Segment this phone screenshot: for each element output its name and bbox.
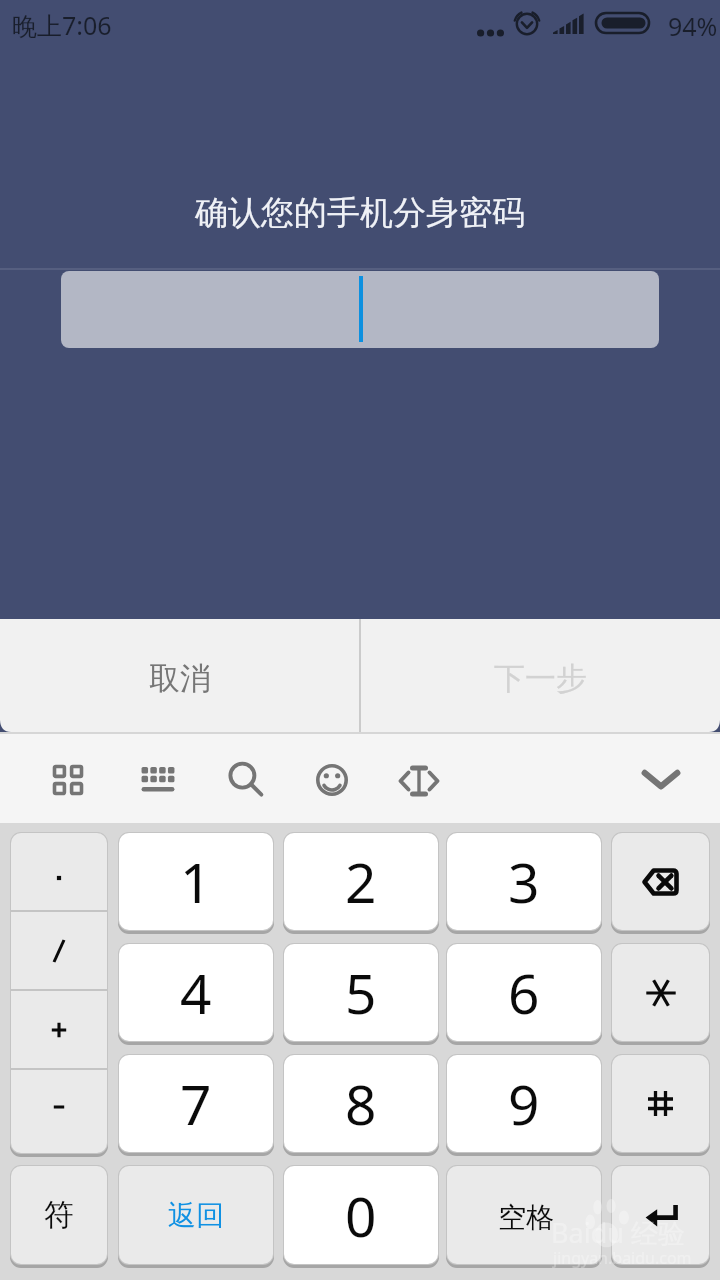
button[interactable] [612, 944, 709, 1041]
staticText: 晚上7:06 [12, 8, 112, 42]
staticText: 2 [345, 844, 377, 919]
staticText: 8 [345, 1066, 377, 1141]
button[interactable]: 3 [447, 833, 601, 930]
staticText: 取消 [149, 659, 211, 698]
button[interactable]: 9 [447, 1055, 601, 1152]
button[interactable]: Symbols [50, 762, 86, 798]
staticText: 3 [508, 844, 540, 919]
staticText: 5 [345, 955, 377, 1030]
button[interactable]: Hide keyboard [637, 762, 685, 796]
button[interactable]: 空格 [447, 1166, 601, 1264]
button[interactable] [612, 1055, 709, 1152]
button[interactable] [11, 1070, 107, 1153]
button[interactable]: Keyboard layout [140, 764, 176, 794]
button[interactable]: 6 [447, 944, 601, 1041]
staticText: 下一步 [494, 659, 587, 698]
staticText: 4 [180, 955, 212, 1030]
staticText: 0 [345, 1178, 377, 1253]
staticText: 9 [508, 1066, 540, 1141]
button[interactable]: 2 [284, 833, 438, 930]
button[interactable]: 7 [119, 1055, 273, 1152]
button[interactable]: 取消 [0, 619, 360, 734]
button[interactable] [11, 912, 107, 989]
button[interactable]: 0 [284, 1166, 438, 1264]
button[interactable]: 8 [284, 1055, 438, 1152]
staticText: 空格 [498, 1200, 554, 1235]
staticText: Baidu 经验 [551, 1214, 685, 1251]
button[interactable] [11, 991, 107, 1068]
staticText: 符 [44, 1196, 74, 1234]
staticText: 6 [508, 955, 540, 1030]
button[interactable]: Move cursor [398, 760, 440, 802]
button[interactable]: 5 [284, 944, 438, 1041]
button[interactable]: 下一步 [360, 619, 720, 734]
button[interactable] [612, 1166, 709, 1264]
button[interactable] [61, 271, 659, 348]
button[interactable] [11, 833, 107, 910]
button[interactable]: 符 [11, 1166, 107, 1264]
staticText: 94% [668, 9, 718, 43]
button[interactable] [612, 833, 709, 930]
staticText: 返回 [168, 1198, 224, 1233]
button[interactable]: Emoji [312, 760, 352, 800]
staticText: jingyan.baidu.com [553, 1247, 692, 1269]
button[interactable]: 返回 [119, 1166, 273, 1264]
button[interactable]: Search [226, 760, 266, 800]
staticText: 1 [180, 844, 212, 919]
button[interactable]: 4 [119, 944, 273, 1041]
button[interactable]: 1 [119, 833, 273, 930]
staticText: 7 [180, 1066, 212, 1141]
staticText: 确认您的手机分身密码 [195, 192, 525, 234]
